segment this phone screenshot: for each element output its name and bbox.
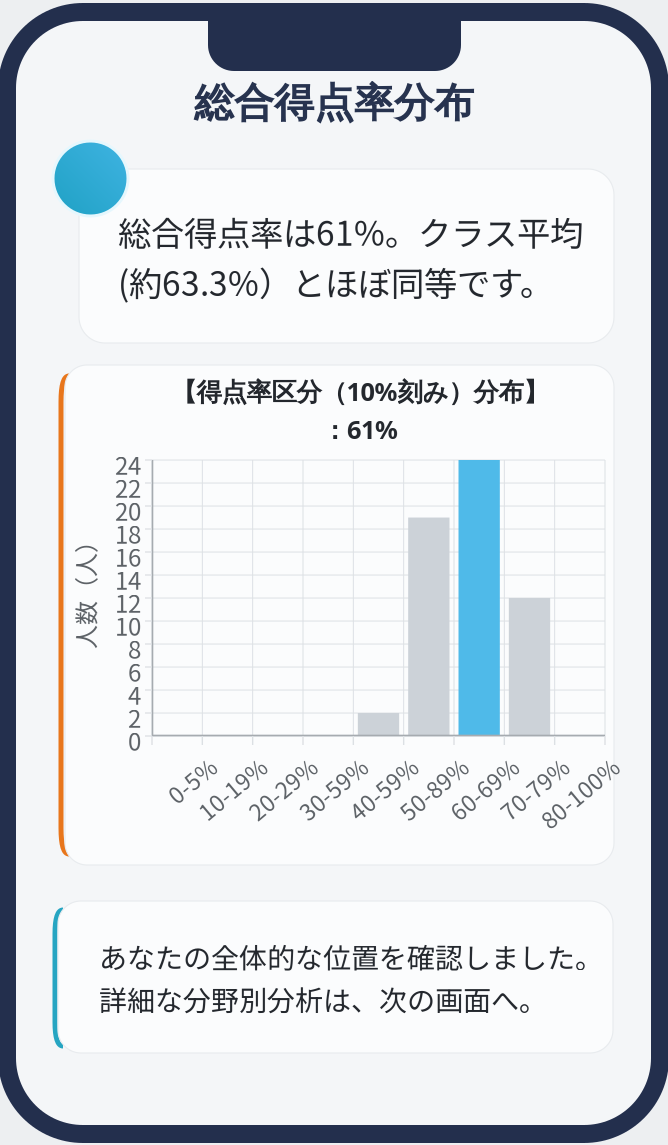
staticText: 70-79% <box>474 750 555 780</box>
staticText: 2 <box>128 700 141 726</box>
staticText: 【得点率区分（10%刻み）分布】 <box>171 374 548 404</box>
staticText: 18 <box>115 516 141 542</box>
staticText: 総合得点率は61%。クラス平均 (約63.3%）とほぼ同等です。 <box>118 207 583 305</box>
staticText: 40-59% <box>323 750 404 780</box>
staticText: 4 <box>128 677 141 703</box>
staticText: 総合得点率分布 <box>194 78 474 126</box>
staticText: 30-59% <box>272 750 353 780</box>
staticText: 10 <box>115 608 141 634</box>
staticText: 14 <box>115 562 141 588</box>
staticText: 12 <box>115 585 141 611</box>
staticText: 20-29% <box>222 750 303 780</box>
staticText: 60-69% <box>423 750 504 780</box>
staticText: 80-100% <box>511 750 605 780</box>
staticText: ：61% <box>322 412 398 442</box>
staticText: 50-89% <box>373 750 454 780</box>
staticText: 22 <box>115 470 141 496</box>
staticText: 10-19% <box>172 750 253 780</box>
staticText: 0 <box>128 723 141 749</box>
staticText: あなたの全体的な位置を確認しました。 詳細な分野別分析は、次の画面へ。 <box>99 936 603 1019</box>
staticText: 20 <box>115 493 141 519</box>
staticText: 24 <box>115 447 141 473</box>
staticText: 8 <box>128 631 141 657</box>
staticText: 人数（人） <box>25 572 145 606</box>
staticText: 6 <box>128 654 141 680</box>
staticText: 16 <box>115 539 141 565</box>
staticText: 0-5% <box>147 750 202 780</box>
